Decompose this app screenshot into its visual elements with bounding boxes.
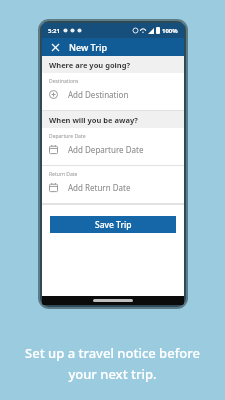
staticText: Save Trip <box>95 219 132 231</box>
staticText: Departure Date <box>49 133 86 140</box>
staticText: New Trip <box>69 41 107 53</box>
staticText: Set up a travel notice before <box>12 344 213 362</box>
button[interactable]: Destinations <box>42 73 184 110</box>
staticText: Destinations <box>49 78 79 85</box>
button[interactable]: Return Date <box>42 166 184 203</box>
staticText: Add Return Date <box>68 182 131 193</box>
staticText: 5:21 <box>48 27 60 35</box>
staticText: Add Destination <box>68 89 129 100</box>
staticText: 100% <box>162 27 178 35</box>
staticText: Add Departure Date <box>68 144 144 155</box>
button[interactable]: Save Trip <box>50 216 176 233</box>
button[interactable]: Close <box>49 41 62 54</box>
staticText: Return Date <box>49 171 78 178</box>
staticText: your next trip. <box>12 365 213 383</box>
button[interactable]: Departure Date <box>42 128 184 165</box>
staticText: Where are you going? <box>49 60 131 70</box>
staticText: When will you be away? <box>49 115 138 125</box>
